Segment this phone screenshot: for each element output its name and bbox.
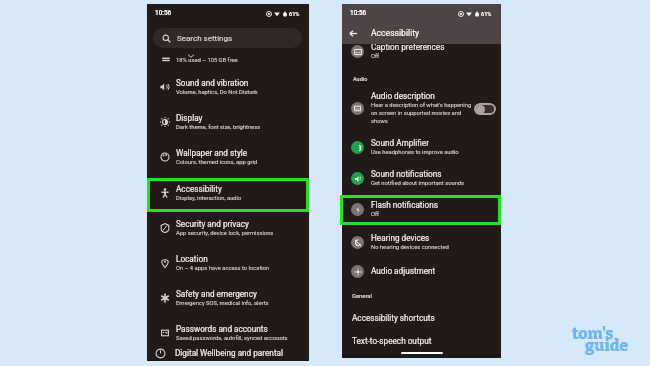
staticText: Caption preferences (371, 42, 445, 52)
staticText: Audio description (371, 91, 435, 101)
button[interactable]: Location (147, 249, 309, 277)
staticText: Display, interaction, audio (176, 195, 242, 202)
button[interactable]: Audio description (342, 89, 501, 127)
staticText: Flash notifications (371, 200, 438, 210)
button[interactable]: 18% used – 105 GB free (147, 50, 309, 70)
staticText: Saved passwords, autofill, synced accoun… (176, 335, 288, 342)
staticText: 61% (481, 11, 492, 17)
staticText: tom's (572, 324, 614, 343)
button[interactable]: Wallpaper and style (147, 143, 309, 171)
staticText: 10:56 (155, 9, 172, 17)
button[interactable]: Passwords and accounts (147, 319, 309, 347)
staticText: Security and privacy (176, 219, 249, 229)
staticText: Off (371, 211, 380, 218)
staticText: Location (176, 254, 208, 264)
staticText: App security, device lock, permissions (176, 230, 274, 237)
staticText: Sound notifications (371, 169, 442, 179)
staticText: Dark theme, font size, brightness (176, 124, 261, 131)
staticText: 61% (289, 11, 300, 17)
staticText: Wallpaper and style (176, 148, 248, 158)
staticText: guide (585, 336, 629, 355)
button[interactable]: Search settings (153, 28, 302, 48)
staticText: Accessibility (176, 184, 222, 194)
button[interactable]: Sound notifications (342, 165, 501, 191)
button[interactable]: Flash notifications (342, 196, 501, 222)
button[interactable]: Audio description toggle (474, 103, 496, 115)
staticText: Get notified about important sounds (371, 180, 465, 187)
button[interactable]: Security and privacy (147, 214, 309, 242)
staticText: Emergency SOS, medical info, alerts (176, 300, 269, 307)
staticText: On – 4 apps have access to location (176, 265, 270, 272)
staticText: Accessibility (371, 28, 420, 38)
staticText: Off (371, 53, 380, 60)
staticText: 18% used – 105 GB free (176, 57, 238, 64)
button[interactable]: Audio adjustment (342, 258, 501, 284)
staticText: Colours, themed icons, app grid (176, 159, 258, 166)
button[interactable]: Display (147, 108, 309, 136)
staticText: Hearing devices (371, 233, 430, 243)
button[interactable]: Text-to-speech output (342, 330, 501, 352)
staticText: Display (176, 113, 203, 123)
staticText: General (352, 293, 372, 300)
staticText: Sound Amplifier (371, 138, 429, 148)
staticText: Digital Wellbeing and parental (175, 348, 284, 358)
button[interactable]: Caption preferences (342, 38, 501, 64)
staticText: Sound and vibration (176, 78, 249, 88)
staticText: Passwords and accounts (176, 324, 268, 334)
staticText: Accessibility shortcuts (352, 313, 435, 323)
button[interactable]: Accessibility (147, 179, 309, 207)
button[interactable]: Hearing devices (342, 229, 501, 255)
staticText: Hear a description of what's happening o… (371, 102, 472, 124)
staticText: Use headphones to improve audio (371, 149, 459, 156)
button[interactable]: Safety and emergency (147, 284, 309, 312)
staticText: Text-to-speech output (352, 336, 432, 346)
staticText: Safety and emergency (176, 289, 257, 299)
button[interactable]: Accessibility shortcuts (342, 307, 501, 329)
button[interactable]: Back (344, 24, 363, 43)
staticText: Search settings (177, 34, 233, 43)
staticText: 10:56 (350, 9, 367, 17)
staticText: Audio adjustment (371, 266, 436, 276)
button[interactable]: Sound Amplifier (342, 134, 501, 160)
button[interactable]: Sound and vibration (147, 73, 309, 101)
button[interactable]: Digital Wellbeing and parental (147, 345, 309, 361)
staticText: No hearing devices connected (371, 244, 449, 251)
staticText: Audio (353, 76, 368, 82)
staticText: Volume, haptics, Do Not Disturb (176, 89, 258, 96)
